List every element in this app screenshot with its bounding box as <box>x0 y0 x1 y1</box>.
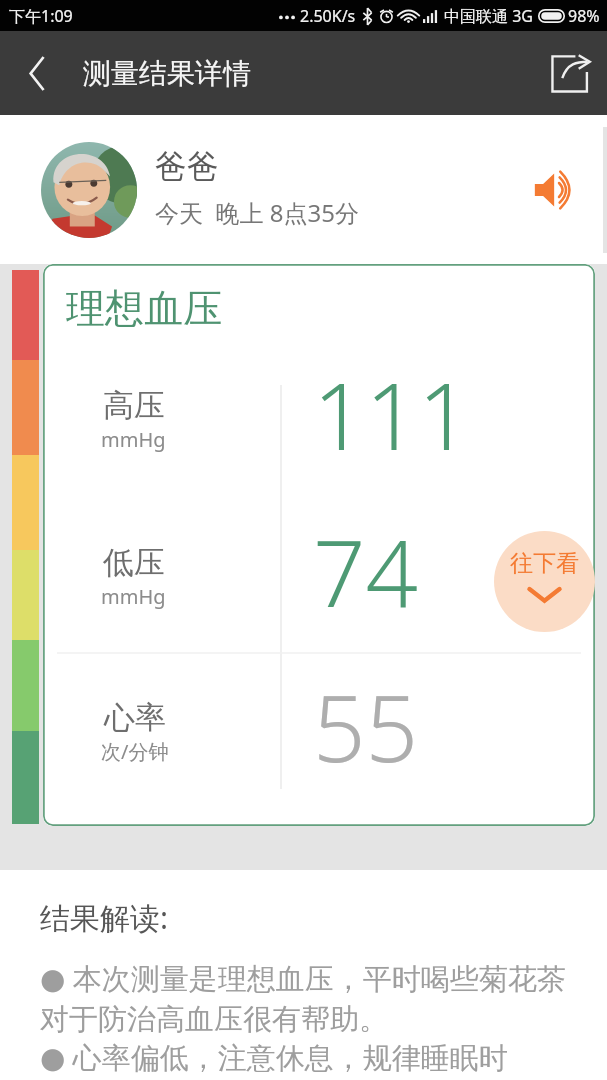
staticText: 中国联通 3G <box>444 5 533 27</box>
staticText: 111 <box>313 352 471 477</box>
button[interactable]: Share <box>533 31 607 115</box>
button[interactable]: Back <box>0 31 74 115</box>
staticText: mmHg <box>101 426 166 453</box>
staticText: mmHg <box>101 583 166 610</box>
staticText: 爸爸 <box>155 146 219 186</box>
staticText: ● 本次测量是理想血压，平时喝些菊花茶对于防治高血压很有帮助。 <box>40 958 587 1037</box>
staticText: 55 <box>313 664 419 789</box>
button[interactable]: Scroll down for more <box>494 531 595 632</box>
staticText: 2.50K/s <box>300 5 356 27</box>
button[interactable]: 理想血压 <box>43 264 595 826</box>
staticText: 心率 <box>104 698 166 737</box>
staticText: 次/分钟 <box>101 738 169 765</box>
staticText: 低压 <box>103 543 165 582</box>
staticText: 理想血压 <box>66 284 222 333</box>
staticText: 98% <box>568 5 600 27</box>
staticText: 高压 <box>103 386 165 425</box>
staticText: 测量结果详情 <box>83 56 251 91</box>
staticText: 往下看 <box>510 549 579 578</box>
staticText: 74 <box>313 509 419 634</box>
staticText: ● 心率偏低，注意休息，规律睡眠时 <box>40 1037 508 1077</box>
staticText: 今天 晚上 8点35分 <box>155 196 359 229</box>
staticText: 结果解读: <box>40 897 169 938</box>
button[interactable]: Play voice result <box>525 159 587 221</box>
staticText: 下午1:09 <box>9 5 73 27</box>
